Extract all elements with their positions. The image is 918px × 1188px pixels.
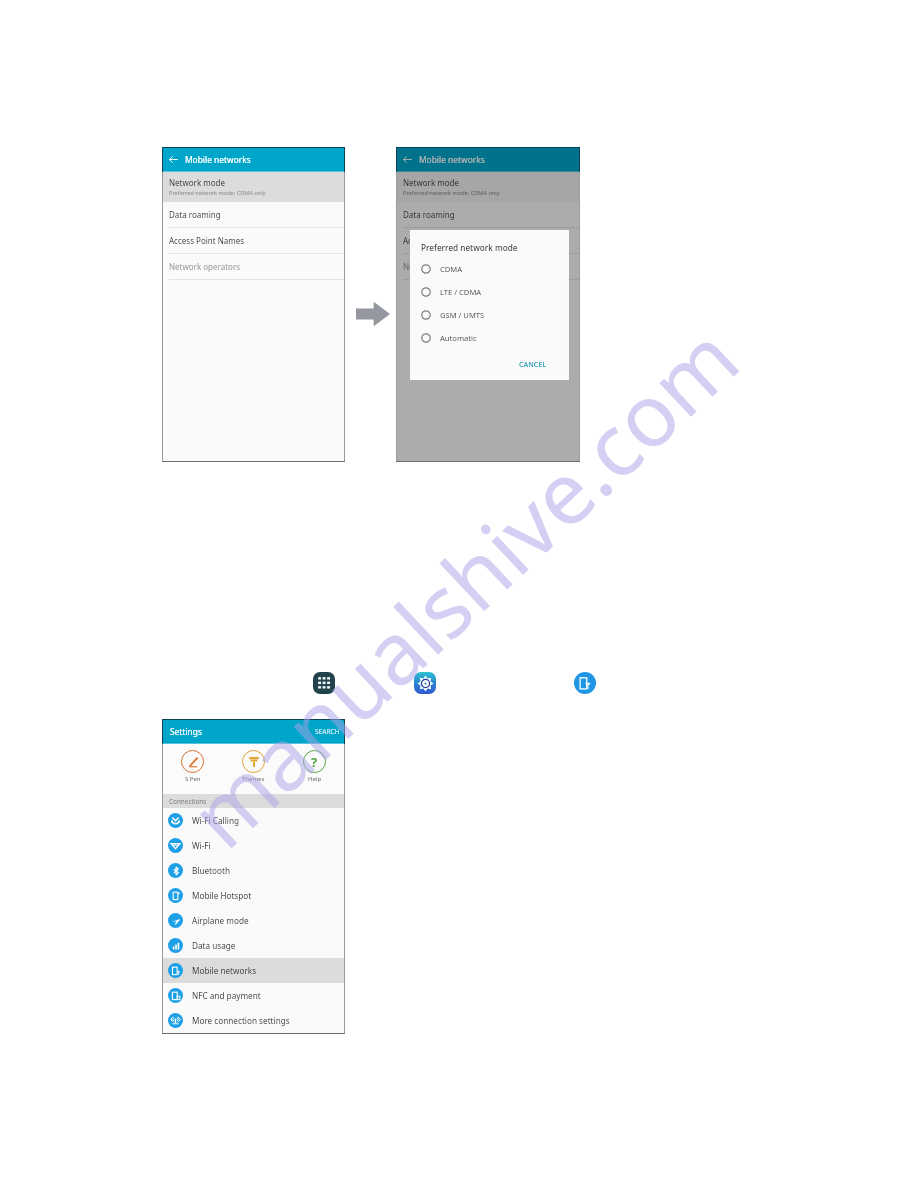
button[interactable]: S Pen [181, 750, 204, 783]
button[interactable]: Data roaming [162, 202, 345, 228]
staticText: Help [308, 775, 322, 783]
staticText: Preferred network mode: CDMA only [169, 189, 266, 197]
button[interactable]: CANCEL [519, 359, 547, 369]
button[interactable]: Back [396, 147, 419, 172]
button[interactable]: Bluetooth [168, 858, 345, 883]
button[interactable]: Data roaming [396, 202, 580, 228]
staticText: Data roaming [169, 209, 221, 220]
button[interactable]: Network operators [162, 254, 345, 280]
staticText: Mobile networks [192, 965, 257, 976]
staticText: Bluetooth [192, 865, 230, 876]
staticText: Access Point Names [169, 235, 245, 246]
button[interactable]: Wi-Fi [168, 833, 345, 858]
button[interactable]: Back [396, 147, 580, 172]
staticText: SEARCH [315, 727, 340, 736]
button[interactable]: Network operators [396, 254, 580, 280]
staticText: Connections [169, 797, 207, 806]
staticText: Mobile networks [185, 154, 251, 165]
staticText: GSM / UMTS [440, 310, 485, 320]
staticText: More connection settings [192, 1015, 290, 1026]
staticText: CDMA [440, 264, 463, 274]
button[interactable]: Wi-Fi Calling [168, 808, 345, 833]
button[interactable]: GSM / UMTS [421, 303, 569, 326]
button[interactable]: Settings [414, 672, 436, 694]
staticText: Wi-Fi Calling [192, 815, 240, 826]
button[interactable]: Mobile networks [168, 958, 345, 983]
staticText: Network operators [403, 261, 475, 272]
button[interactable]: Access Point Names [396, 228, 580, 254]
staticText: Data usage [192, 940, 236, 951]
button[interactable]: Mobile networks [574, 672, 596, 694]
staticText: Automatic [440, 333, 477, 343]
staticText: Mobile networks [419, 154, 485, 165]
staticText: NFC and payment [192, 990, 261, 1001]
staticText: CANCEL [519, 359, 547, 369]
staticText: Network operators [169, 261, 241, 272]
staticText: S Pen [185, 775, 201, 783]
staticText: Network mode [169, 177, 226, 188]
button[interactable]: Apps [313, 672, 335, 694]
button[interactable]: NFC and payment [168, 983, 345, 1008]
button[interactable]: Mobile Hotspot [168, 883, 345, 908]
button[interactable]: Access Point Names [162, 228, 345, 254]
staticText: Network mode [403, 177, 460, 188]
button[interactable]: LTE / CDMA [421, 280, 569, 303]
button[interactable]: CDMA [421, 257, 569, 280]
button[interactable]: Automatic [421, 326, 569, 349]
staticText: Mobile Hotspot [192, 890, 252, 901]
button[interactable]: Data usage [168, 933, 345, 958]
staticText: Settings [170, 726, 202, 737]
staticText: Access Point Names [403, 235, 479, 246]
button[interactable]: More connection settings [168, 1008, 345, 1033]
button[interactable]: ? [303, 750, 326, 783]
staticText: Data roaming [403, 209, 455, 220]
staticText: LTE / CDMA [440, 287, 482, 297]
button[interactable]: Back [162, 147, 345, 172]
button[interactable]: Network mode [403, 172, 580, 202]
staticText: Airplane mode [192, 915, 249, 926]
staticText: manualshive.com [163, 299, 762, 871]
button[interactable]: Themes [242, 750, 265, 783]
staticText: Preferred network mode: CDMA only [403, 189, 500, 197]
button[interactable]: Back [162, 147, 185, 172]
staticText: Themes [242, 775, 265, 783]
staticText: ? [311, 753, 318, 771]
staticText: Preferred network mode [421, 242, 518, 253]
staticText: Wi-Fi [192, 840, 211, 851]
button[interactable]: Airplane mode [168, 908, 345, 933]
button[interactable]: Settings [170, 719, 340, 744]
button[interactable]: Network mode [169, 172, 345, 202]
button[interactable]: SEARCH [315, 727, 340, 736]
